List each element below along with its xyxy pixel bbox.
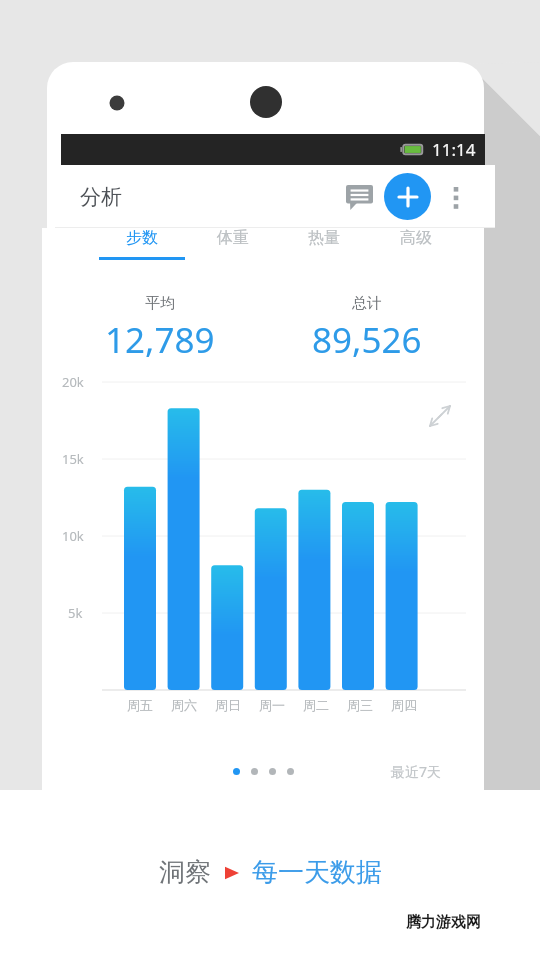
button[interactable]: Add xyxy=(384,173,431,220)
staticText: 平均 xyxy=(145,294,175,313)
button[interactable]: 平均 xyxy=(56,294,263,364)
button[interactable]: More options xyxy=(439,180,473,214)
button[interactable]: 热量 xyxy=(278,228,370,272)
staticText: 分析 xyxy=(80,184,122,210)
staticText: 周二 xyxy=(303,697,329,713)
staticText: 12,789 xyxy=(105,316,215,364)
staticText: 热量 xyxy=(308,228,340,248)
staticText: 腾力游戏网 xyxy=(406,913,481,932)
staticText: 每一天数据 xyxy=(252,856,382,889)
staticText: 周日 xyxy=(215,697,241,713)
button[interactable]: Messages xyxy=(338,176,380,218)
staticText: 周四 xyxy=(391,697,417,713)
staticText: 周三 xyxy=(347,697,373,713)
button[interactable]: 步数 xyxy=(96,228,187,272)
staticText: 89,526 xyxy=(312,316,422,364)
staticText: 步数 xyxy=(126,228,158,248)
staticText: 总计 xyxy=(352,294,382,313)
staticText: 11:14 xyxy=(432,138,476,161)
staticText: 20k xyxy=(62,373,84,391)
staticText: 周六 xyxy=(171,697,197,713)
staticText: 高级 xyxy=(400,228,432,248)
staticText: 周一 xyxy=(259,697,285,713)
staticText: 15k xyxy=(62,450,84,468)
staticText: 最近7天 xyxy=(391,762,442,781)
staticText: 体重 xyxy=(217,228,249,248)
button[interactable]: Expand chart xyxy=(438,400,472,434)
button[interactable]: 高级 xyxy=(370,228,462,272)
staticText: 洞察 xyxy=(159,856,211,889)
button[interactable]: 体重 xyxy=(187,228,278,272)
staticText: 5k xyxy=(68,604,83,622)
staticText: 周五 xyxy=(127,697,153,713)
staticText: 10k xyxy=(62,527,84,545)
button[interactable]: 总计 xyxy=(263,294,470,364)
